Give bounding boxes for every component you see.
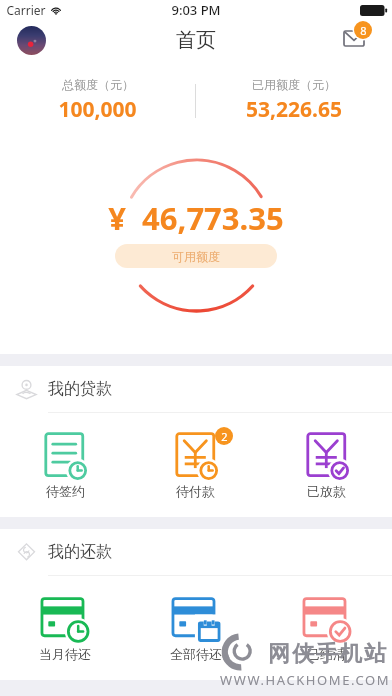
button[interactable]: 待签约 [0, 413, 130, 517]
button[interactable]: Profile [17, 26, 46, 55]
staticText: 9:03 PM [171, 1, 221, 19]
staticText: 当月待还 [39, 646, 91, 662]
staticText: 可用额度 [172, 249, 220, 264]
button[interactable]: Messages [340, 22, 376, 58]
button[interactable]: 全部待还 [130, 576, 261, 680]
staticText: 我的还款 [48, 542, 112, 562]
staticText: WWW.HACKHOME.COM [220, 671, 391, 689]
staticText: 全部待还 [170, 646, 222, 662]
staticText: 我的贷款 [48, 379, 112, 399]
staticText: 总额度（元） [62, 77, 134, 92]
staticText: 网侠手机站 [267, 640, 387, 668]
staticText: 已用额度（元） [252, 77, 336, 92]
staticText: 8 [360, 23, 367, 38]
staticText: 100,000 [58, 95, 137, 124]
staticText: Carrier [6, 2, 46, 18]
staticText: ¥ 46,773.35 [108, 197, 284, 239]
staticText: 已结清 [307, 646, 346, 662]
staticText: 53,226.65 [246, 95, 342, 124]
button[interactable]: 当月待还 [0, 576, 130, 680]
staticText: 待签约 [46, 483, 85, 499]
button[interactable]: 已结清 [261, 576, 392, 680]
staticText: 2 [221, 429, 228, 444]
staticText: 已放款 [307, 483, 346, 499]
staticText: 首页 [176, 28, 216, 53]
staticText: 待付款 [176, 483, 215, 499]
button[interactable]: 已放款 [261, 413, 392, 517]
button[interactable]: 2 [130, 413, 261, 517]
